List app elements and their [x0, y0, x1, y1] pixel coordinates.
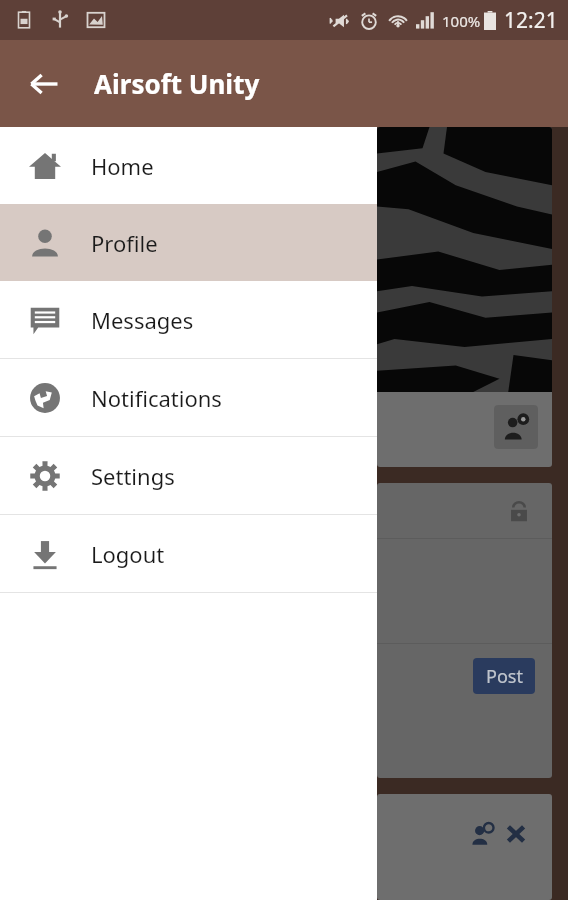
button[interactable]: Back [18, 58, 70, 110]
staticText: Post [486, 664, 523, 689]
staticText: Notifications [91, 383, 222, 413]
staticText: 12:21 [504, 6, 558, 35]
button[interactable]: Settings [0, 437, 377, 514]
button[interactable] [377, 794, 552, 900]
button[interactable]: Profile [0, 204, 377, 281]
button[interactable]: Post [473, 658, 535, 694]
button[interactable]: Post [377, 483, 552, 778]
button[interactable]: Home [0, 127, 377, 204]
button[interactable]: Messages [0, 281, 377, 358]
staticText: Messages [91, 305, 194, 335]
button[interactable]: Manage members [377, 127, 552, 467]
staticText: 100% [442, 11, 481, 31]
button[interactable]: Notifications [0, 359, 377, 436]
staticText: Logout [91, 539, 165, 569]
button[interactable]: Logout [0, 515, 377, 592]
staticText: Home [91, 151, 154, 181]
staticText: Settings [91, 461, 175, 491]
staticText: Profile [91, 228, 158, 258]
staticText: Airsoft Unity [94, 66, 260, 101]
button[interactable]: Manage members [494, 405, 538, 449]
